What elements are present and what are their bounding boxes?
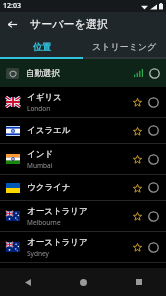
staticText: オーストラリア	[27, 237, 88, 248]
button[interactable]: Favorite	[130, 181, 144, 195]
button[interactable]: 自動選択	[0, 59, 166, 87]
button[interactable]: オーストラリア	[0, 232, 166, 262]
staticText: オーストラリア	[27, 206, 88, 217]
button[interactable]: イギリス	[0, 87, 166, 117]
staticText: 自動選択	[26, 68, 60, 79]
button[interactable]: Favorite	[130, 95, 144, 109]
staticText: インド	[27, 149, 54, 160]
button[interactable]: Select server	[147, 124, 160, 137]
button[interactable]: Select server	[147, 241, 160, 254]
staticText: イスラエル	[27, 125, 71, 136]
button[interactable]: Home	[56, 268, 111, 296]
button[interactable]: インド	[0, 144, 166, 174]
staticText: London	[27, 104, 51, 113]
button[interactable]: Back	[0, 12, 24, 36]
staticText: ウクライナ	[27, 182, 71, 193]
staticText: イギリス	[27, 92, 62, 103]
button[interactable]: Favorite	[130, 209, 144, 223]
button[interactable]: Select server	[147, 181, 160, 194]
staticText: Mumbai	[27, 161, 53, 170]
button[interactable]: オーストラリア	[0, 201, 166, 231]
button[interactable]: 位置	[0, 36, 83, 57]
staticText: ストリーミング	[92, 41, 157, 52]
button[interactable]: Back	[0, 268, 56, 296]
staticText: Melbourne	[27, 218, 61, 227]
staticText: Sydney	[27, 249, 49, 258]
button[interactable]: Select server	[147, 153, 160, 166]
staticText: 12:03	[3, 1, 21, 11]
button[interactable]: ストリーミング	[83, 36, 166, 57]
staticText: 位置	[33, 41, 51, 52]
button[interactable]: Select server	[147, 96, 160, 109]
button[interactable]: ウクライナ	[0, 175, 166, 200]
button[interactable]: Recent apps	[111, 268, 166, 296]
button[interactable]: イスラエル	[0, 118, 166, 143]
button[interactable]: Favorite	[130, 152, 144, 166]
button[interactable]: Favorite	[130, 124, 144, 138]
button[interactable]: Select server	[147, 210, 160, 223]
button[interactable]: Favorite	[130, 240, 144, 254]
staticText: サーバーを選択	[30, 17, 108, 31]
